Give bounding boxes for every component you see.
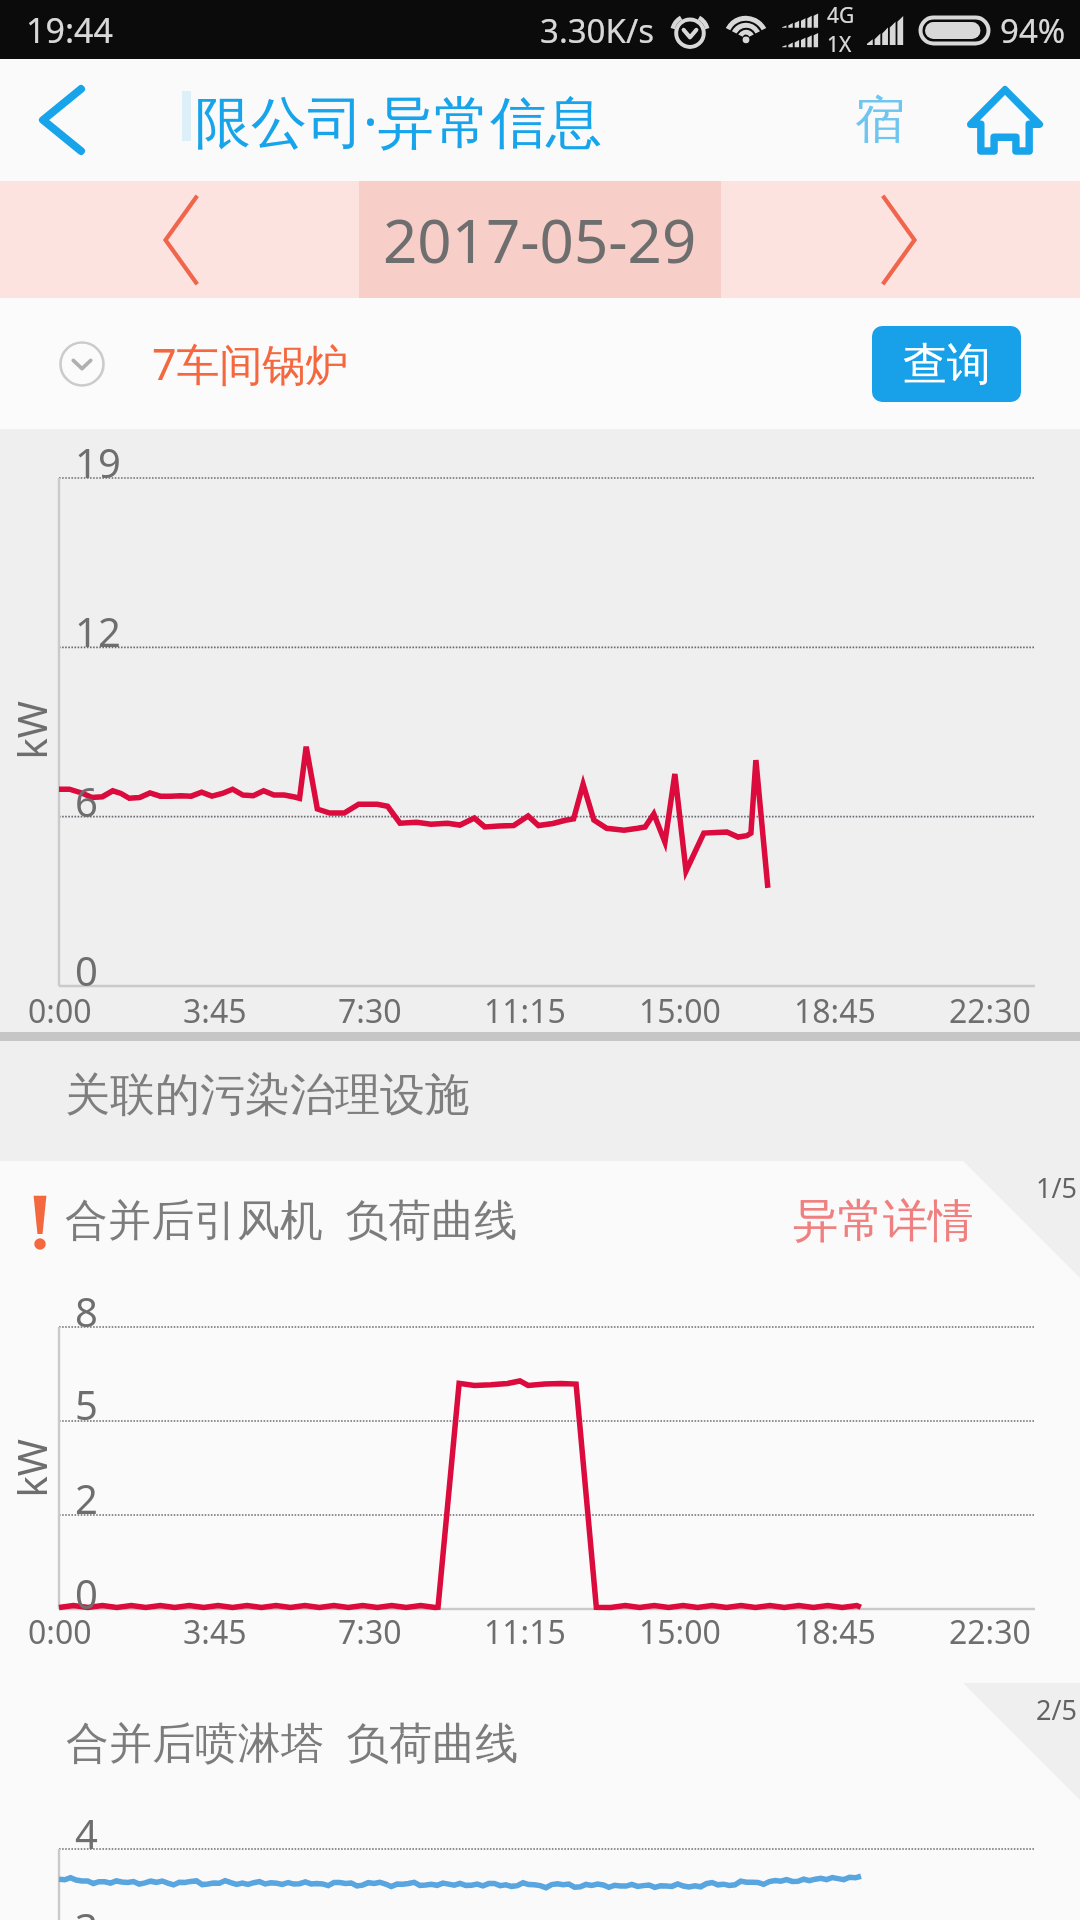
staticText: 宿 [855, 89, 905, 152]
staticText: 1X [827, 30, 852, 59]
staticText: 0:00 [28, 989, 92, 1033]
button[interactable]: 宿 [820, 59, 920, 181]
staticText: 限公司·异常信息 [195, 82, 603, 158]
staticText: 19:44 [26, 7, 113, 53]
staticText: 8 [75, 1284, 98, 1338]
staticText: 查询 [903, 337, 991, 392]
button[interactable]: 查询 [872, 326, 1021, 402]
staticText: 18:45 [794, 1610, 876, 1654]
staticText: 6 [75, 774, 98, 828]
button[interactable]: 7车间锅炉 [59, 334, 349, 393]
staticText: 2017-05-29 [383, 199, 697, 281]
staticText: 7车间锅炉 [152, 334, 349, 393]
staticText: 3:45 [183, 989, 247, 1033]
staticText: 3:45 [183, 1610, 247, 1654]
button[interactable]: Back [0, 59, 124, 181]
staticText: 关联的污染治理设施 [65, 1067, 470, 1124]
staticText: kW [3, 1438, 57, 1497]
staticText: kW [3, 700, 57, 759]
staticText: 0 [75, 1566, 98, 1620]
staticText: 18:45 [794, 989, 876, 1033]
staticText: 3 [75, 1900, 98, 1920]
staticText: 0:00 [28, 1610, 92, 1654]
staticText: 19 [75, 435, 121, 489]
staticText: 11:15 [484, 989, 566, 1033]
staticText: 2 [75, 1471, 98, 1525]
staticText: 94% [1000, 8, 1066, 53]
staticText: 合并后喷淋塔 负荷曲线 [66, 1712, 519, 1771]
staticText: 22:30 [949, 989, 1031, 1033]
staticText: 3.30K/s [540, 8, 654, 53]
staticText: 15:00 [639, 989, 721, 1033]
staticText: 合并后引风机 负荷曲线 [65, 1189, 518, 1248]
staticText: 7:30 [338, 989, 402, 1033]
button[interactable]: Next day [854, 194, 946, 286]
staticText: 12 [75, 604, 121, 658]
button[interactable]: Home [935, 59, 1075, 181]
staticText: 异常详情 [793, 1193, 973, 1250]
staticText: 15:00 [639, 1610, 721, 1654]
staticText: 5 [75, 1377, 98, 1431]
staticText: 22:30 [949, 1610, 1031, 1654]
staticText: 11:15 [484, 1610, 566, 1654]
button[interactable]: 异常详情 [793, 1193, 973, 1250]
staticText: 4G [827, 1, 855, 30]
staticText: 0 [75, 943, 98, 997]
staticText: 4 [75, 1806, 98, 1860]
staticText: 1/5 [1036, 1169, 1077, 1206]
staticText: 2/5 [1036, 1691, 1077, 1728]
staticText: 7:30 [338, 1610, 402, 1654]
button[interactable]: Previous day [134, 194, 226, 286]
